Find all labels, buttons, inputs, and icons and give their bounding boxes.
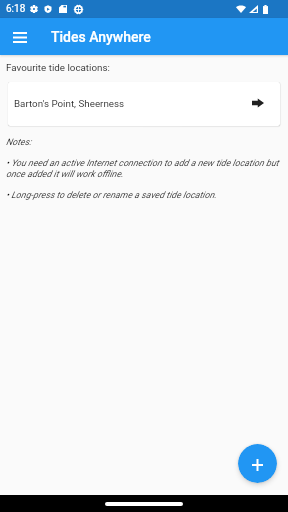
button[interactable]: Add tide location [238, 444, 277, 483]
staticText: • Long-press to delete or rename a saved… [6, 190, 217, 201]
staticText: 6:18 [6, 3, 26, 15]
staticText: Tides Anywhere [51, 29, 151, 45]
staticText: Favourite tide locations: [6, 62, 110, 73]
staticText: Notes: [6, 137, 32, 148]
staticText: • You need an active Internet connection… [6, 158, 286, 180]
button[interactable]: Open navigation menu [7, 24, 33, 50]
staticText: Barton's Point, Sheerness [14, 98, 125, 109]
button[interactable]: Barton's Point, Sheerness [8, 82, 280, 126]
